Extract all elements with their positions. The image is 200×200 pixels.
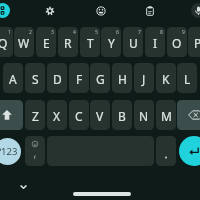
button[interactable]: G <box>90 63 110 93</box>
staticText: 3 <box>51 29 54 36</box>
button[interactable]: Clipboard <box>142 3 158 19</box>
staticText: C <box>75 108 83 124</box>
button[interactable]: Emoji <box>93 3 109 19</box>
button[interactable]: R <box>58 27 78 57</box>
button[interactable]: T <box>80 27 100 57</box>
staticText: D <box>53 71 62 87</box>
staticText: 5 <box>95 29 98 36</box>
staticText: G <box>96 71 105 87</box>
button[interactable]: K <box>156 63 176 93</box>
staticText: P <box>194 35 200 51</box>
staticText: 4 <box>73 29 76 36</box>
staticText: F <box>76 71 83 87</box>
staticText: R <box>64 35 72 51</box>
button[interactable]: Settings <box>42 3 58 19</box>
staticText: 6 <box>116 29 119 36</box>
staticText: S <box>32 71 39 87</box>
button[interactable]: Hide keyboard <box>18 181 29 193</box>
button[interactable]: O <box>167 27 187 57</box>
staticText: 7 <box>138 29 141 36</box>
staticText: X <box>53 108 61 124</box>
button[interactable]: Emoji and comma <box>25 136 45 166</box>
button[interactable]: S <box>25 63 45 93</box>
button[interactable]: Shift <box>0 100 23 130</box>
staticText: 9 <box>182 29 185 36</box>
staticText: W <box>18 35 30 51</box>
button[interactable]: J <box>134 63 154 93</box>
staticText: H <box>118 71 127 87</box>
staticText: K <box>162 71 170 87</box>
staticText: J <box>142 71 146 87</box>
button[interactable]: H <box>112 63 132 93</box>
button[interactable]: Z <box>25 100 45 130</box>
button[interactable]: Backspace <box>177 100 200 130</box>
button[interactable]: B <box>112 100 132 130</box>
button[interactable]: U <box>123 27 143 57</box>
button[interactable]: N <box>134 100 154 130</box>
button[interactable]: V <box>90 100 110 130</box>
button[interactable]: E <box>36 27 56 57</box>
button[interactable]: D <box>47 63 67 93</box>
button[interactable]: ?123 <box>0 136 25 166</box>
staticText: Z <box>32 108 39 124</box>
button[interactable]: F <box>69 63 89 93</box>
button[interactable]: Q <box>0 27 13 57</box>
staticText: 2 <box>29 29 32 36</box>
button[interactable]: C <box>69 100 89 130</box>
button[interactable]: X <box>47 100 67 130</box>
staticText: O <box>172 35 182 51</box>
staticText: E <box>43 35 50 51</box>
button[interactable]: Voice input <box>191 3 200 18</box>
button[interactable]: Period <box>156 136 176 166</box>
staticText: B <box>118 108 126 124</box>
staticText: V <box>96 108 104 124</box>
button[interactable]: W <box>14 27 34 57</box>
staticText: Q <box>0 35 8 51</box>
button[interactable]: Gboard <box>0 3 10 18</box>
button[interactable]: A <box>3 63 23 93</box>
staticText: A <box>9 71 17 87</box>
staticText: I <box>153 35 158 51</box>
staticText: T <box>87 35 94 51</box>
button[interactable]: P <box>188 27 200 57</box>
staticText: L <box>184 71 191 87</box>
button[interactable]: Enter <box>179 136 200 166</box>
button[interactable]: L <box>177 63 197 93</box>
staticText: ?123 <box>0 145 18 158</box>
staticText: U <box>129 35 138 51</box>
staticText: N <box>139 108 149 124</box>
staticText: M <box>161 108 172 124</box>
staticText: Y <box>108 35 115 51</box>
button[interactable]: I <box>145 27 165 57</box>
button[interactable]: Y <box>101 27 121 57</box>
staticText: 1 <box>8 29 11 36</box>
button[interactable]: M <box>156 100 176 130</box>
staticText: 8 <box>160 29 163 36</box>
